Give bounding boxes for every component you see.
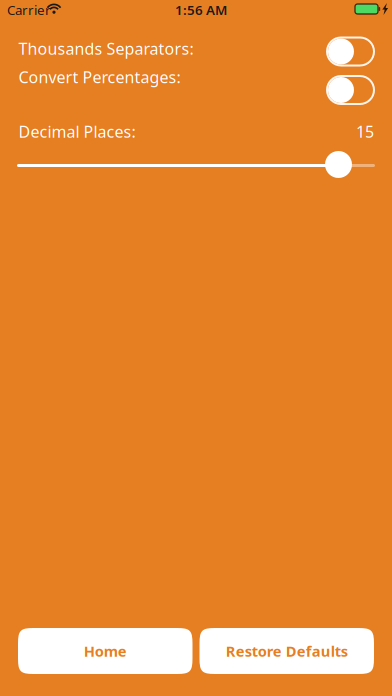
staticText: Convert Percentages: bbox=[18, 66, 180, 88]
staticText: Restore Defaults bbox=[226, 641, 348, 661]
staticText: 15 bbox=[356, 121, 374, 142]
staticText: Carrier bbox=[7, 1, 51, 19]
staticText: Decimal Places: bbox=[18, 121, 135, 142]
staticText: Home bbox=[84, 641, 127, 661]
button[interactable] bbox=[327, 37, 374, 65]
staticText: 1:56 AM bbox=[175, 1, 227, 19]
button[interactable]: Decimal places slider bbox=[325, 151, 352, 178]
button[interactable]: Restore Defaults bbox=[199, 628, 374, 674]
button[interactable]: Home bbox=[18, 628, 192, 674]
button[interactable] bbox=[327, 76, 374, 104]
staticText: Thousands Separators: bbox=[18, 38, 193, 59]
